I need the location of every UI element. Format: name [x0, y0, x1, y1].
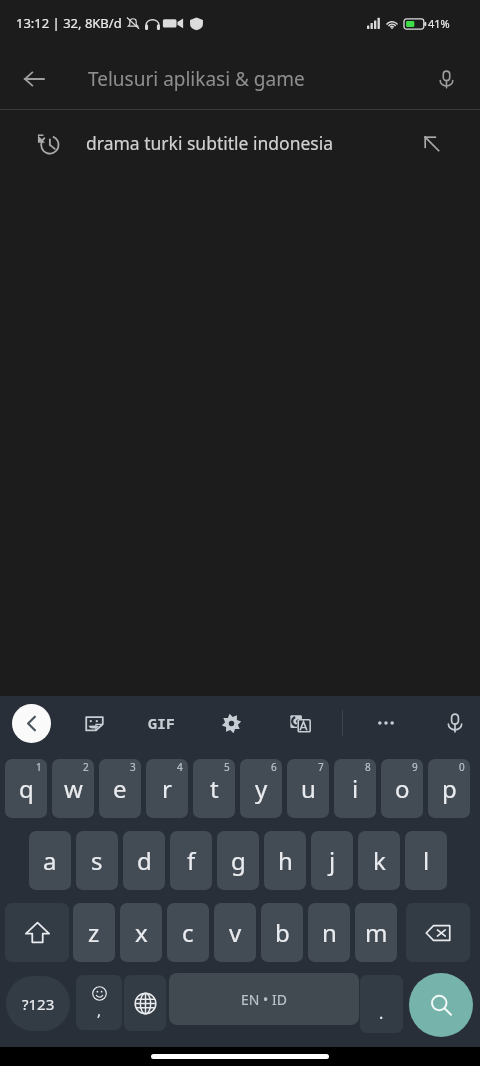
staticText: ,: [97, 1000, 102, 1020]
staticText: 8: [365, 760, 371, 774]
button[interactable]: t: [193, 759, 235, 818]
button[interactable]: h: [264, 831, 306, 890]
button[interactable]: Back: [12, 57, 56, 101]
staticText: .: [379, 1002, 384, 1024]
button[interactable]: p: [428, 759, 470, 818]
button[interactable]: Stickers: [75, 704, 113, 742]
staticText: y: [255, 772, 268, 805]
button[interactable]: r: [146, 759, 188, 818]
staticText: 3: [130, 760, 136, 774]
button[interactable]: s: [76, 831, 118, 890]
staticText: k: [373, 844, 386, 877]
button[interactable]: z: [73, 903, 115, 962]
staticText: f: [187, 844, 196, 877]
staticText: a: [43, 844, 57, 877]
staticText: r: [162, 772, 172, 805]
button[interactable]: x: [120, 903, 162, 962]
staticText: d: [137, 844, 152, 877]
staticText: n: [322, 916, 337, 949]
staticText: 5: [224, 760, 230, 774]
staticText: drama turki subtitle indonesia: [86, 131, 334, 155]
staticText: x: [135, 916, 148, 949]
staticText: z: [88, 916, 100, 949]
button[interactable]: EN • ID: [169, 973, 359, 1025]
button[interactable]: i: [334, 759, 376, 818]
button[interactable]: d: [123, 831, 165, 890]
button[interactable]: y: [240, 759, 282, 818]
staticText: GIF: [148, 713, 176, 733]
staticText: g: [231, 844, 246, 877]
button[interactable]: u: [287, 759, 329, 818]
staticText: 41%: [428, 16, 450, 31]
button[interactable]: o: [381, 759, 423, 818]
staticText: s: [91, 844, 103, 877]
staticText: b: [275, 916, 290, 949]
button[interactable]: c: [167, 903, 209, 962]
button[interactable]: k: [358, 831, 400, 890]
staticText: u: [301, 772, 316, 805]
staticText: o: [395, 772, 410, 805]
button[interactable]: Settings: [212, 704, 250, 742]
button[interactable]: More options: [367, 704, 405, 742]
staticText: q: [19, 772, 34, 805]
staticText: 1: [36, 760, 42, 774]
staticText: 0: [459, 760, 465, 774]
button[interactable]: Collapse toolbar: [12, 704, 51, 743]
button[interactable]: b: [261, 903, 303, 962]
staticText: 13:12 | 32, 8KB/d: [16, 14, 122, 32]
staticText: w: [64, 772, 83, 805]
button[interactable]: Emoji: [76, 975, 122, 1030]
button[interactable]: w: [52, 759, 94, 818]
button[interactable]: Backspace: [406, 903, 470, 962]
button[interactable]: Voice search: [424, 57, 468, 101]
staticText: 2: [83, 760, 89, 774]
staticText: v: [229, 916, 242, 949]
button[interactable]: g: [217, 831, 259, 890]
button[interactable]: Translate: [281, 704, 319, 742]
staticText: 9: [412, 760, 418, 774]
staticText: e: [113, 772, 127, 805]
button[interactable]: .: [360, 975, 403, 1033]
staticText: Telusuri aplikasi & game: [88, 66, 305, 92]
staticText: i: [352, 772, 359, 805]
staticText: 6: [271, 760, 277, 774]
staticText: 7: [318, 760, 324, 774]
button[interactable]: ?123: [6, 976, 70, 1031]
button[interactable]: j: [311, 831, 353, 890]
button[interactable]: m: [355, 903, 397, 962]
button[interactable]: q: [5, 759, 47, 818]
button[interactable]: GIF: [143, 704, 181, 742]
staticText: p: [442, 772, 457, 805]
button[interactable]: e: [99, 759, 141, 818]
staticText: m: [365, 916, 388, 949]
staticText: h: [278, 844, 293, 877]
staticText: t: [210, 772, 219, 805]
button[interactable]: Voice input: [436, 704, 474, 742]
staticText: l: [423, 844, 430, 877]
button[interactable]: Change language: [124, 975, 166, 1031]
button[interactable]: l: [405, 831, 447, 890]
staticText: 4: [177, 760, 183, 774]
button[interactable]: v: [214, 903, 256, 962]
staticText: c: [182, 916, 194, 949]
button[interactable]: n: [308, 903, 350, 962]
button[interactable]: Shift: [5, 903, 69, 962]
button[interactable]: Search: [409, 973, 473, 1037]
button[interactable]: drama turki subtitle indonesia: [0, 110, 480, 176]
staticText: ?123: [22, 994, 55, 1014]
staticText: EN • ID: [241, 990, 287, 1009]
staticText: j: [329, 844, 336, 877]
button[interactable]: f: [170, 831, 212, 890]
button[interactable]: a: [29, 831, 71, 890]
